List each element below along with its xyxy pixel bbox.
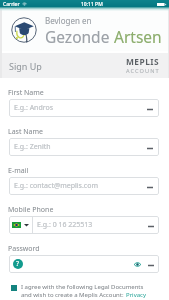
staticText: E.g.: 0 16 225513	[37, 220, 93, 230]
button[interactable]: Show password	[134, 261, 141, 268]
staticText: and wish to create a Meplis Account:	[21, 291, 126, 299]
button[interactable]: E.g.: contact@meplis.com	[9, 177, 159, 195]
staticText: Bevlogen en	[45, 15, 92, 26]
staticText: Artsen	[114, 26, 162, 47]
button[interactable]: I agree with the following Legal Documen…	[11, 283, 163, 299]
button[interactable]: E.g.: Andros	[9, 99, 159, 117]
staticText: E.g.: contact@meplis.com	[14, 181, 98, 191]
staticText: Mobile Phone	[8, 205, 54, 215]
staticText: Carrier	[3, 1, 20, 8]
staticText: E.g.: Andros	[14, 103, 54, 113]
staticText: Privacy	[126, 291, 147, 299]
staticText: MEPLIS	[126, 56, 160, 67]
staticText: 10:11 PM	[81, 1, 103, 8]
staticText: ACCOUNT	[126, 67, 160, 75]
staticText: E.g.: Zenith	[14, 142, 51, 152]
staticText: I agree with the following Legal Documen…	[21, 283, 144, 291]
staticText: Sign Up	[9, 60, 42, 72]
staticText: E-mail	[8, 166, 29, 176]
staticText: ?	[16, 259, 20, 269]
staticText: First Name	[8, 88, 44, 98]
staticText: Last Name	[8, 127, 44, 137]
button[interactable]: Select country code	[9, 216, 32, 234]
button[interactable]: Password help	[13, 259, 23, 269]
button[interactable]: E.g.: Zenith	[9, 138, 159, 156]
staticText: Password	[8, 244, 40, 254]
staticText: Gezonde	[45, 26, 114, 47]
